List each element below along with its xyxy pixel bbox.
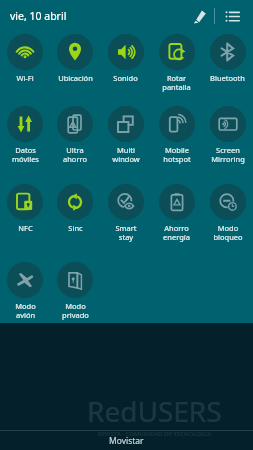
button[interactable]: Ubicación (50, 32, 100, 83)
staticText: Datos móviles (12, 145, 39, 164)
staticText: vie, 10 abril (10, 9, 67, 23)
button[interactable]: Edit (186, 3, 212, 29)
button[interactable]: NFC (0, 182, 50, 233)
button[interactable]: Ultra ahorro (50, 104, 100, 164)
staticText: Ubicación (58, 73, 93, 83)
button[interactable]: Bluetooth (202, 32, 253, 83)
button[interactable]: Modo avión (0, 260, 50, 320)
button[interactable]: Sinc (50, 182, 100, 233)
staticText: Movistar (109, 435, 144, 447)
staticText: Rotar pantalla (162, 73, 191, 92)
button[interactable]: Rotar pantalla (151, 32, 202, 92)
button[interactable]: Smart stay (100, 182, 151, 242)
staticText: RedUSERS (87, 392, 222, 430)
staticText: Wi-Fi (16, 73, 34, 83)
staticText: Sonido (113, 73, 138, 83)
staticText: Ahorro energía (163, 223, 190, 242)
button[interactable]: List view (219, 3, 245, 29)
button[interactable]: Ahorro energía (151, 182, 202, 242)
staticText: Multi window (112, 145, 140, 164)
staticText: Ultra ahorro (63, 145, 87, 164)
button[interactable]: Datos móviles (0, 104, 50, 164)
button[interactable]: Modo bloqueo (202, 182, 253, 242)
button[interactable]: Wi-Fi (0, 32, 50, 83)
button[interactable]: Sonido (100, 32, 151, 83)
staticText: Sinc (68, 223, 83, 233)
button[interactable]: Modo privado (50, 260, 100, 320)
staticText: Modo avión (15, 301, 36, 320)
staticText: Smart stay (115, 223, 137, 242)
staticText: REVISTA · COMUNIDAD DE TECNOLOGIA (98, 430, 212, 438)
staticText: Bluetooth (210, 73, 245, 83)
staticText: NFC (18, 223, 33, 233)
staticText: Screen Mirroring (211, 145, 245, 164)
button[interactable]: Screen Mirroring (202, 104, 253, 164)
staticText: Modo privado (62, 301, 89, 320)
staticText: Modo bloqueo (213, 223, 243, 242)
button[interactable]: Mobile hotspot (151, 104, 202, 164)
button[interactable]: Multi window (100, 104, 151, 164)
staticText: Mobile hotspot (163, 145, 191, 164)
